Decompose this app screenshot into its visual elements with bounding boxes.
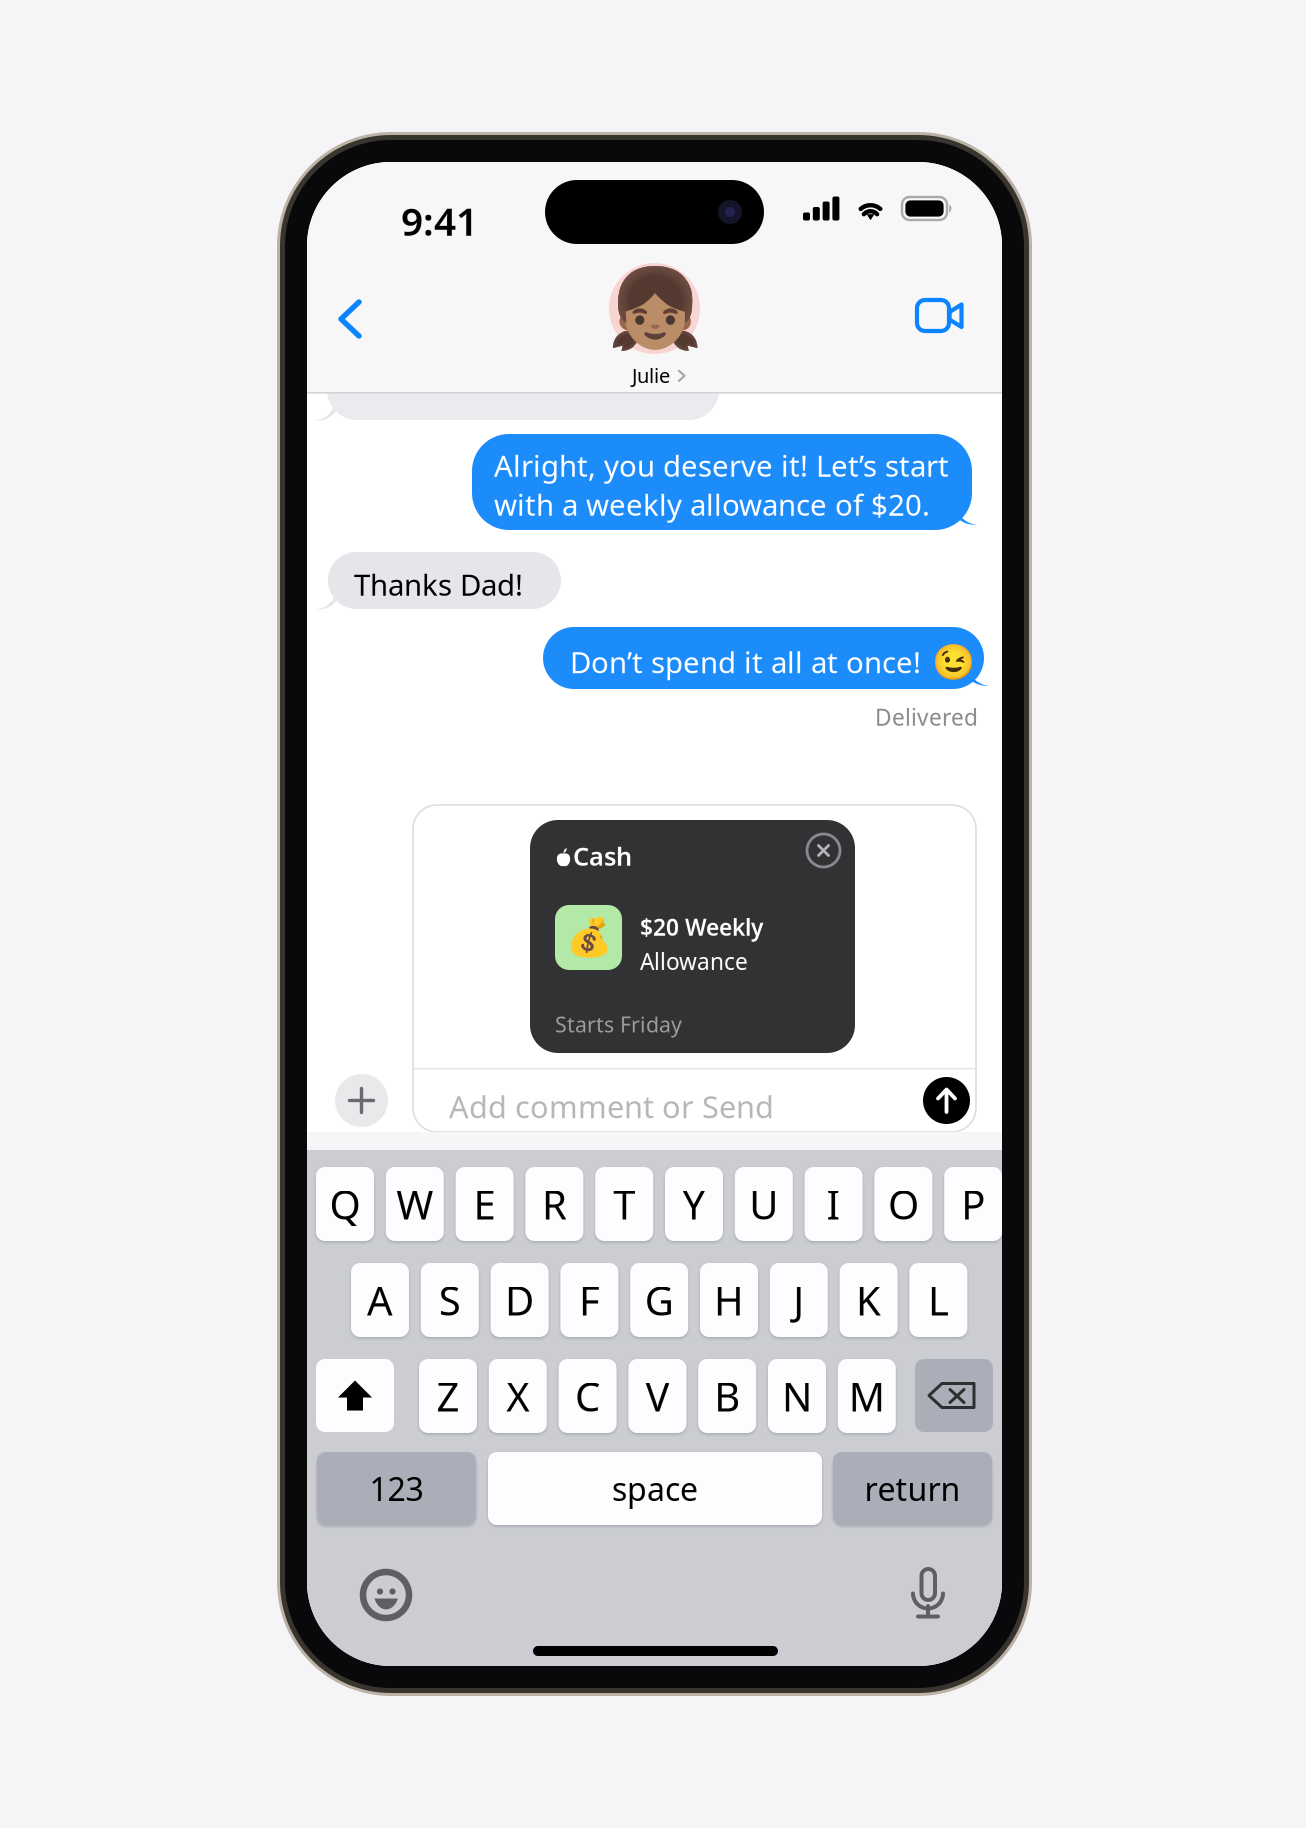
staticText: H (714, 1273, 744, 1326)
button[interactable]: F (560, 1263, 618, 1337)
staticText: Q (329, 1177, 360, 1230)
staticText: Y (682, 1177, 705, 1230)
button[interactable]: X (489, 1359, 547, 1433)
staticText: Z (436, 1369, 459, 1422)
button[interactable]: D (491, 1263, 549, 1337)
button[interactable]: W (386, 1167, 444, 1241)
button[interactable]: R (525, 1167, 583, 1241)
staticText: Allowance (640, 946, 748, 976)
staticText: $20 Weekly (640, 912, 763, 942)
button[interactable]: B (698, 1359, 756, 1433)
staticText: F (579, 1273, 600, 1326)
button[interactable]: Emoji (361, 1570, 411, 1620)
button[interactable]: P (944, 1167, 1002, 1241)
button[interactable]: K (840, 1263, 898, 1337)
button[interactable]: space (488, 1452, 822, 1525)
button[interactable]: Y (665, 1167, 723, 1241)
staticText: R (542, 1177, 567, 1230)
button[interactable]: G (630, 1263, 688, 1337)
staticText: Don’t spend it all at once! (570, 642, 921, 681)
button[interactable]: return (833, 1452, 992, 1525)
button[interactable]: S (421, 1263, 479, 1337)
staticText: M (849, 1369, 885, 1422)
staticText: J (793, 1273, 804, 1326)
staticText: E (474, 1177, 496, 1230)
staticText: 😉 (932, 642, 975, 682)
staticText: X (506, 1369, 529, 1422)
staticText: space (612, 1467, 698, 1510)
staticText: 💰 (565, 916, 611, 959)
staticText: I (827, 1177, 841, 1230)
button[interactable]: C (559, 1359, 617, 1433)
staticText: S (439, 1273, 461, 1326)
staticText: Add comment or Send (449, 1086, 774, 1127)
button[interactable]: Dismiss (807, 834, 840, 867)
staticText: Julie (632, 362, 670, 389)
button[interactable]: A (351, 1263, 409, 1337)
staticText: 123 (369, 1467, 423, 1510)
staticText: Thanks Dad! (354, 565, 523, 604)
button[interactable]: M (838, 1359, 896, 1433)
button[interactable]: Delete (915, 1359, 993, 1432)
button[interactable]: I (805, 1167, 863, 1241)
staticText: T (613, 1177, 635, 1230)
button[interactable]: 123 (317, 1452, 476, 1525)
button[interactable]: Send (923, 1077, 970, 1124)
staticText: C (575, 1369, 600, 1422)
button[interactable]: E (456, 1167, 514, 1241)
button[interactable]: Back (319, 278, 381, 340)
button[interactable]: H (700, 1263, 758, 1337)
button[interactable]: Q (316, 1167, 374, 1241)
staticText: N (782, 1369, 812, 1422)
staticText: return (864, 1467, 960, 1510)
button[interactable]: U (735, 1167, 793, 1241)
button[interactable]: V (628, 1359, 686, 1433)
staticText: Starts Friday (555, 1010, 682, 1038)
staticText: U (749, 1177, 778, 1230)
staticText: Cash (573, 839, 632, 873)
staticText: A (367, 1273, 393, 1326)
button[interactable]: N (768, 1359, 826, 1433)
staticText: O (888, 1177, 919, 1230)
button[interactable]: Shift (316, 1359, 394, 1432)
staticText: D (505, 1273, 534, 1326)
button[interactable]: Apps (335, 1074, 388, 1127)
staticText: L (928, 1273, 949, 1326)
button[interactable]: Julie (632, 362, 685, 389)
button[interactable]: FaceTime video call (917, 300, 962, 331)
staticText: Delivered (875, 702, 978, 732)
staticText: 👧🏽 (606, 264, 702, 353)
button[interactable]: J (770, 1263, 828, 1337)
staticText: P (961, 1177, 985, 1230)
button[interactable]: O (874, 1167, 932, 1241)
button[interactable]: Z (419, 1359, 477, 1433)
staticText: 9:41 (401, 195, 478, 246)
button[interactable]: Dictation (911, 1568, 945, 1619)
staticText: K (856, 1273, 881, 1326)
staticText: G (645, 1273, 674, 1326)
staticText: B (714, 1369, 740, 1422)
staticText: Alright, you deserve it! Let’s start (494, 446, 949, 485)
staticText: with a weekly allowance of $20. (494, 485, 930, 524)
staticText: W (396, 1177, 433, 1230)
button[interactable]: T (595, 1167, 653, 1241)
button[interactable]: L (909, 1263, 967, 1337)
staticText: V (645, 1369, 669, 1422)
